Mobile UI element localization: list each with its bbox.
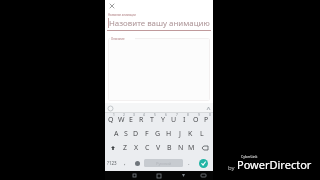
button[interactable]: N — [175, 141, 186, 155]
staticText: P — [204, 115, 209, 125]
staticText: D — [133, 129, 139, 139]
button[interactable]: J — [174, 127, 185, 141]
staticText: . — [188, 159, 190, 167]
staticText: CyberLink — [241, 154, 258, 159]
staticText: W — [118, 115, 125, 125]
button[interactable]: X — [131, 141, 142, 155]
button[interactable]: B — [164, 141, 175, 155]
button[interactable]: K — [185, 127, 196, 141]
staticText: E — [129, 115, 133, 125]
button[interactable]: Z — [120, 141, 131, 155]
staticText: V — [156, 143, 161, 153]
staticText: 7 — [176, 113, 178, 117]
button[interactable]: D — [131, 127, 141, 141]
button[interactable]: , — [119, 155, 131, 171]
button[interactable]: Google — [107, 105, 113, 111]
staticText: H — [166, 129, 172, 139]
staticText: I — [183, 115, 186, 125]
staticText: B — [167, 143, 172, 153]
staticText: Q — [108, 115, 114, 125]
staticText: Назовите вашу анимацию — [109, 18, 210, 29]
staticText: K — [188, 129, 193, 139]
button[interactable]: 2 — [116, 113, 126, 127]
button[interactable] — [108, 38, 210, 101]
button[interactable]: 0 — [201, 113, 212, 127]
button[interactable]: A — [111, 127, 121, 141]
staticText: Y — [161, 115, 165, 125]
button[interactable]: Home — [154, 171, 163, 180]
staticText: PowerDirector — [237, 157, 312, 172]
staticText: 1 — [113, 113, 115, 117]
button[interactable]: 3 — [126, 113, 136, 127]
staticText: 5 — [154, 113, 156, 117]
staticText: M — [188, 143, 195, 153]
button[interactable]: ?123 — [105, 155, 119, 171]
staticText: Название анимации — [108, 13, 136, 17]
button[interactable]: 4 — [136, 113, 146, 127]
button[interactable]: Recents — [179, 171, 188, 180]
button[interactable]: Shift — [106, 141, 120, 155]
staticText: S — [124, 129, 128, 139]
staticText: N — [178, 143, 184, 153]
button[interactable]: . — [183, 155, 194, 171]
staticText: U — [171, 115, 177, 125]
staticText: 0 — [209, 113, 211, 117]
button[interactable]: Back — [130, 171, 139, 180]
button[interactable]: Expand — [205, 105, 211, 111]
staticText: 9 — [198, 113, 200, 117]
staticText: Описание — [111, 37, 125, 41]
staticText: 6 — [165, 113, 167, 117]
button[interactable]: L — [196, 127, 207, 141]
button[interactable]: H — [163, 127, 174, 141]
staticText: 8 — [187, 113, 189, 117]
staticText: 3 — [133, 113, 135, 117]
staticText: O — [193, 115, 199, 125]
button[interactable]: V — [153, 141, 164, 155]
staticText: F — [145, 129, 149, 139]
staticText: A — [114, 129, 119, 139]
staticText: , — [124, 159, 126, 167]
staticText: X — [134, 143, 139, 153]
button[interactable]: F — [141, 127, 152, 141]
staticText: Z — [123, 143, 128, 153]
staticText: by — [228, 164, 237, 172]
staticText: 2 — [123, 113, 125, 117]
button[interactable]: Backspace — [197, 141, 212, 155]
staticText: ?123 — [107, 160, 117, 166]
staticText: C — [145, 143, 150, 153]
button[interactable]: Emoji — [131, 155, 144, 171]
button[interactable]: Send — [194, 155, 213, 171]
staticText: R — [139, 115, 144, 125]
staticText: J — [179, 129, 181, 139]
staticText: L — [200, 129, 204, 139]
button[interactable]: Close — [107, 1, 117, 11]
button[interactable]: 5 — [146, 113, 157, 127]
button[interactable]: M — [186, 141, 197, 155]
button[interactable]: Space — [144, 159, 183, 167]
button[interactable]: 6 — [157, 113, 168, 127]
staticText: 4 — [143, 113, 145, 117]
staticText: Русский — [156, 161, 172, 166]
button[interactable]: S — [121, 127, 131, 141]
button[interactable]: 1 — [106, 113, 116, 127]
button[interactable]: C — [142, 141, 153, 155]
button[interactable]: Screenshot — [199, 171, 208, 180]
button[interactable]: G — [152, 127, 163, 141]
button[interactable]: 9 — [190, 113, 201, 127]
button[interactable]: 7 — [168, 113, 179, 127]
staticText: G — [155, 129, 161, 139]
button[interactable]: 8 — [179, 113, 190, 127]
staticText: T — [150, 115, 154, 125]
